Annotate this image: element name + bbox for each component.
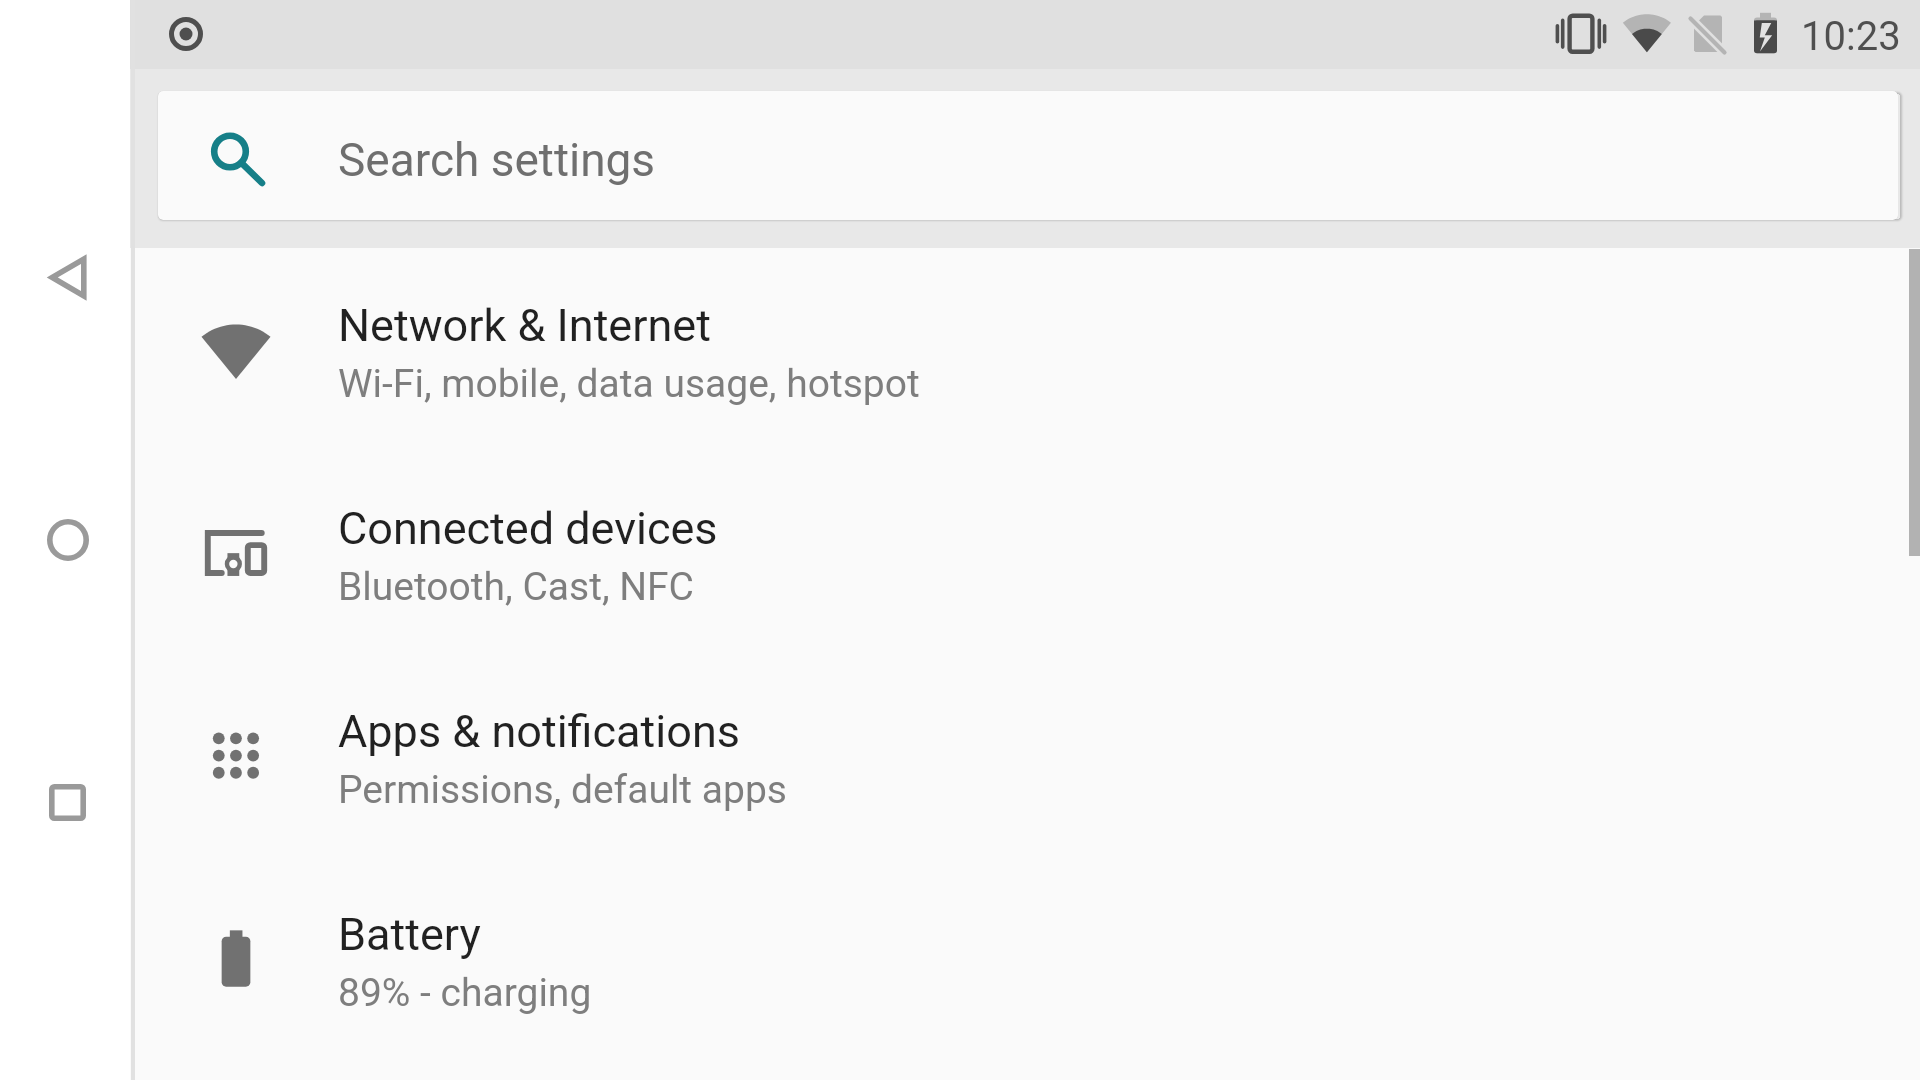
staticText: Apps & notifications bbox=[338, 705, 740, 758]
staticText: Connected devices bbox=[338, 502, 718, 555]
button[interactable]: Back bbox=[38, 246, 98, 308]
staticText: Bluetooth, Cast, NFC bbox=[338, 564, 695, 610]
staticText: Permissions, default apps bbox=[338, 767, 787, 813]
staticText: Network & Internet bbox=[338, 299, 711, 352]
button[interactable]: Home bbox=[38, 510, 98, 570]
button[interactable]: Connected devices bbox=[130, 453, 1920, 656]
button[interactable]: Apps & notifications bbox=[130, 656, 1920, 859]
button[interactable]: Recents bbox=[38, 773, 98, 833]
staticText: 10:23 bbox=[1801, 13, 1901, 60]
button[interactable]: Battery bbox=[130, 859, 1920, 1062]
staticText: 89% - charging bbox=[338, 970, 592, 1016]
staticText: Battery bbox=[338, 908, 481, 961]
button[interactable]: Search settings bbox=[158, 91, 1898, 220]
staticText: Search settings bbox=[338, 133, 656, 187]
button[interactable]: Network & Internet bbox=[130, 250, 1920, 453]
staticText: Wi-Fi, mobile, data usage, hotspot bbox=[338, 361, 920, 407]
